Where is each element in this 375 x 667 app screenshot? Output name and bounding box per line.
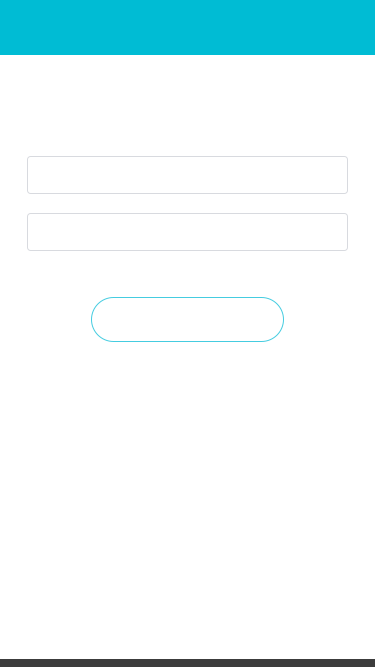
button[interactable]: Password — [0, 213, 375, 251]
button[interactable]: Log in — [0, 297, 375, 342]
button[interactable]: Username — [0, 156, 375, 194]
